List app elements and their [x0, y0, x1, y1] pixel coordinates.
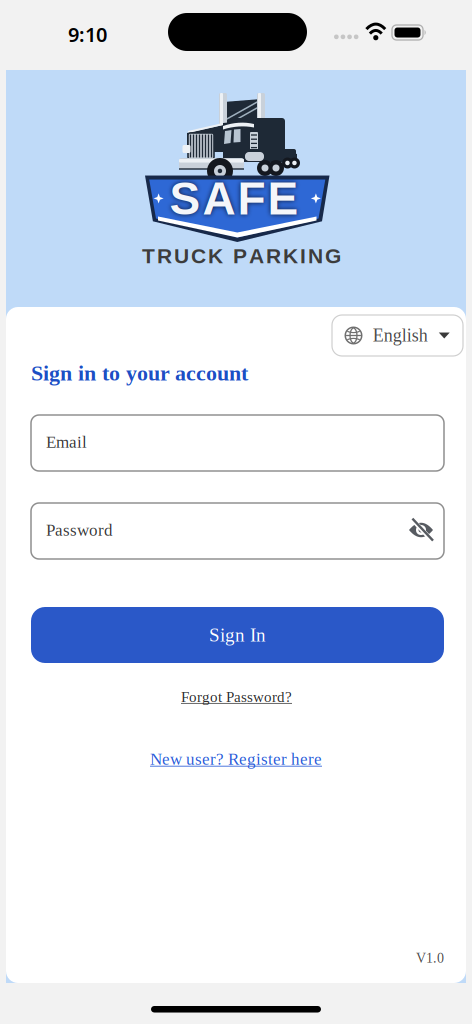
staticText: Sign in to your account	[31, 361, 248, 385]
button[interactable]: English	[332, 315, 463, 356]
staticText: K	[208, 244, 223, 268]
button[interactable]: Forgot Password?	[181, 689, 292, 705]
staticText: P	[233, 244, 247, 268]
staticText: Forgot Password?	[181, 689, 292, 705]
staticText: English	[373, 325, 428, 345]
staticText: U	[174, 244, 189, 268]
staticText: K	[283, 244, 298, 268]
staticText: R	[157, 244, 172, 268]
button[interactable]: Show password	[408, 520, 435, 544]
staticText: V1.0	[416, 950, 444, 966]
staticText: A	[249, 244, 264, 268]
staticText: Sign In	[209, 624, 266, 645]
button[interactable]: Email	[31, 415, 444, 471]
button[interactable]: Password	[31, 503, 444, 559]
staticText: G	[325, 244, 341, 268]
staticText: Email	[46, 432, 87, 451]
staticText: R	[266, 244, 281, 268]
staticText: 9:10	[68, 21, 107, 48]
button[interactable]: Sign In	[31, 607, 444, 663]
staticText: N	[308, 244, 323, 268]
staticText: I	[300, 244, 306, 268]
staticText: T	[142, 244, 155, 268]
staticText: SAFE	[169, 173, 298, 224]
staticText: C	[191, 244, 206, 268]
button[interactable]: New user? Register here	[150, 750, 322, 768]
staticText: New user? Register here	[150, 750, 322, 768]
staticText: Password	[46, 520, 113, 539]
